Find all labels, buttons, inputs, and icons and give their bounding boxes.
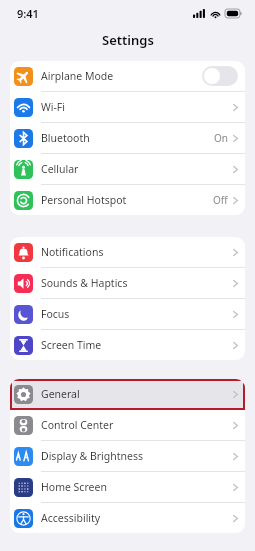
staticText: Notifications <box>41 245 233 259</box>
staticText: Cellular <box>41 162 233 176</box>
staticText: Accessibility <box>41 511 233 525</box>
staticText: 9:41 <box>17 6 39 21</box>
staticText: Wi-Fi <box>41 100 233 114</box>
button[interactable]: Bluetooth <box>10 123 245 153</box>
staticText: Display & Brightness <box>41 449 233 463</box>
button[interactable]: Home Screen <box>10 472 245 502</box>
button[interactable]: Control Center <box>10 410 245 440</box>
staticText: Off <box>213 193 228 207</box>
button[interactable]: Airplane Mode <box>10 61 245 91</box>
button[interactable]: Cellular <box>10 154 245 184</box>
button[interactable]: Screen Time <box>10 330 245 360</box>
staticText: Personal Hotspot <box>41 193 213 207</box>
staticText: General <box>41 387 233 401</box>
button[interactable]: Display & Brightness <box>10 441 245 471</box>
button[interactable]: Accessibility <box>10 503 245 533</box>
button[interactable]: General <box>10 379 245 409</box>
staticText: Home Screen <box>41 480 233 494</box>
staticText: Screen Time <box>41 338 233 352</box>
staticText: Control Center <box>41 418 233 432</box>
button[interactable]: Focus <box>10 299 245 329</box>
button[interactable]: Wi-Fi <box>10 92 245 122</box>
button[interactable]: Notifications <box>10 237 245 267</box>
staticText: On <box>214 131 228 145</box>
staticText: Airplane Mode <box>41 69 202 83</box>
staticText: Bluetooth <box>41 131 214 145</box>
button[interactable] <box>202 66 238 86</box>
staticText: Focus <box>41 307 233 321</box>
button[interactable]: Sounds & Haptics <box>10 268 245 298</box>
staticText: Sounds & Haptics <box>41 276 233 290</box>
button[interactable]: Personal Hotspot <box>10 185 245 215</box>
staticText: Settings <box>102 31 154 49</box>
